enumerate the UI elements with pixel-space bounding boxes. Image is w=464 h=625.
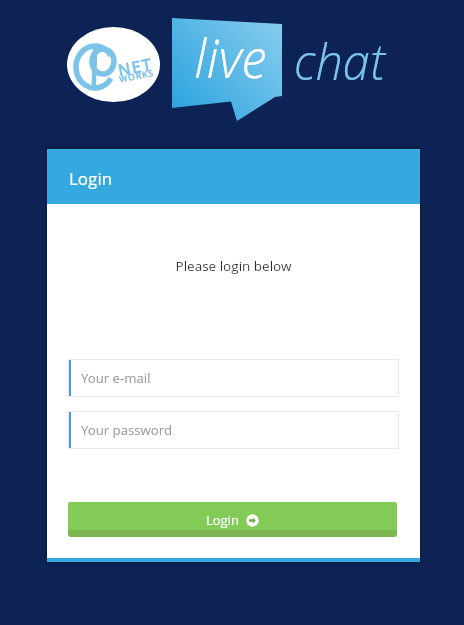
- button[interactable]: Your password: [68, 411, 399, 449]
- staticText: NET: [116, 53, 155, 81]
- staticText: Your e-mail: [81, 369, 151, 387]
- button[interactable]: Login: [47, 149, 420, 204]
- staticText: chat: [294, 28, 385, 95]
- staticText: Login: [206, 511, 239, 529]
- staticText: Please login below: [47, 257, 420, 275]
- staticText: live: [194, 21, 266, 93]
- button[interactable]: Login: [68, 502, 397, 537]
- staticText: Your password: [81, 421, 173, 439]
- staticText: Login: [69, 167, 113, 190]
- staticText: WORKS: [118, 67, 156, 85]
- button[interactable]: Your e-mail: [68, 359, 399, 397]
